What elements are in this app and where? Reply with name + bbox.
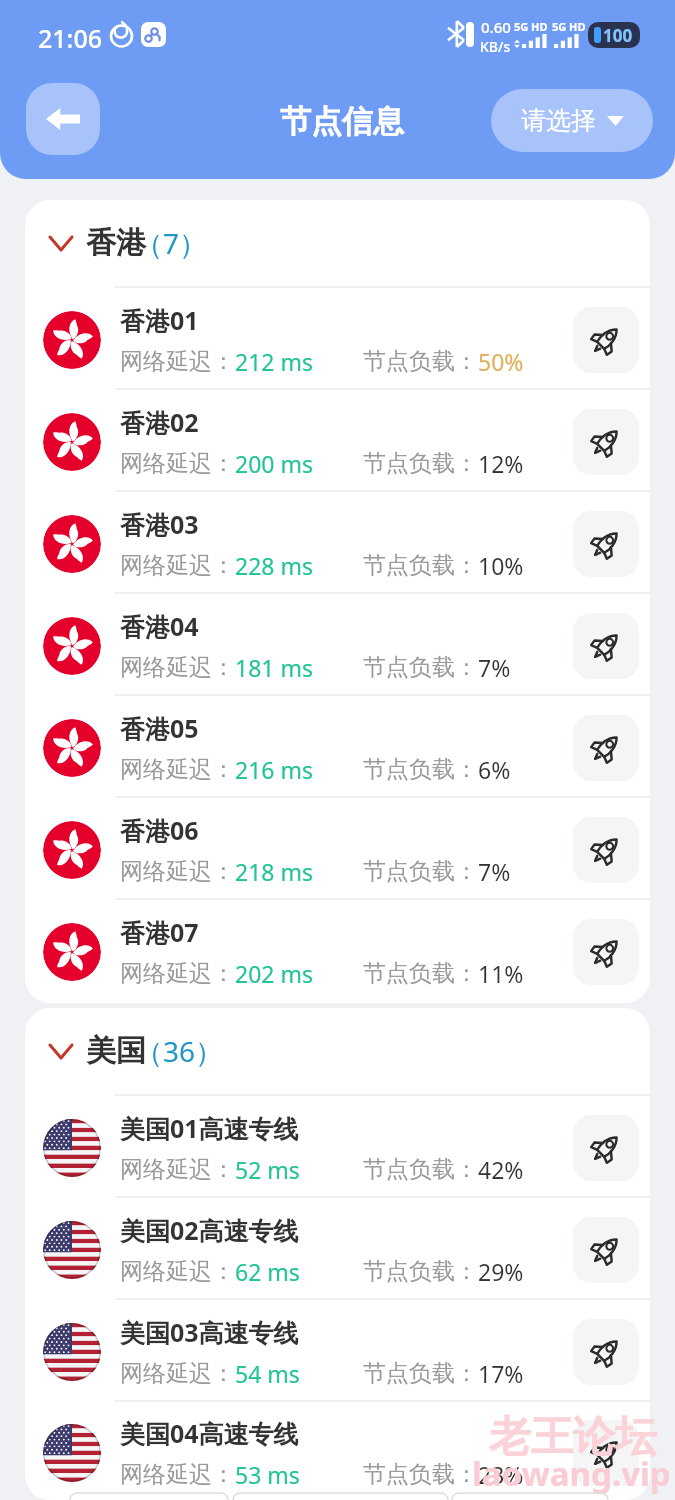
staticText: 0.60 bbox=[481, 17, 511, 37]
staticText: 10% bbox=[478, 550, 524, 581]
staticText: 香港 bbox=[86, 224, 146, 262]
staticText: 5G HD bbox=[552, 19, 586, 34]
button[interactable]: Connect bbox=[573, 1217, 639, 1283]
staticText: 202 ms bbox=[235, 958, 313, 989]
staticText: 节点负载： bbox=[363, 1460, 478, 1489]
staticText: 网络延迟： bbox=[120, 653, 235, 682]
staticText: 54 ms bbox=[235, 1358, 300, 1389]
staticText: 网络延迟： bbox=[120, 551, 235, 580]
staticText: 网络延迟： bbox=[120, 1257, 235, 1286]
staticText: 节点负载： bbox=[363, 347, 478, 376]
staticText: 21:06 bbox=[38, 21, 103, 55]
staticText: 节点负载： bbox=[363, 551, 478, 580]
staticText: 228 ms bbox=[235, 550, 313, 581]
staticText: 老王论坛 bbox=[489, 1411, 657, 1464]
staticText: KB/s bbox=[480, 37, 511, 56]
staticText: 212 ms bbox=[235, 346, 313, 377]
button[interactable]: 香港02 bbox=[25, 390, 650, 490]
staticText: 42% bbox=[478, 1154, 524, 1185]
button[interactable]: Connect bbox=[573, 1420, 639, 1486]
staticText: laowang.vip bbox=[472, 1451, 671, 1496]
staticText: 请选择 bbox=[521, 105, 596, 136]
staticText: 5G HD bbox=[514, 19, 548, 34]
staticText: 节点负载： bbox=[363, 653, 478, 682]
staticText: 7% bbox=[478, 652, 511, 683]
button[interactable]: 香港 bbox=[25, 200, 650, 286]
staticText: 节点负载： bbox=[363, 857, 478, 886]
staticText: 节点负载： bbox=[363, 755, 478, 784]
staticText: 美国02高速专线 bbox=[120, 1213, 299, 1247]
staticText: 节点负载： bbox=[363, 1257, 478, 1286]
staticText: 17% bbox=[478, 1358, 524, 1389]
button[interactable]: Connect bbox=[573, 1319, 639, 1385]
button[interactable]: 香港05 bbox=[25, 696, 650, 796]
staticText: 节点负载： bbox=[363, 1155, 478, 1184]
button[interactable]: 香港07 bbox=[25, 900, 650, 1000]
staticText: 网络延迟： bbox=[120, 347, 235, 376]
staticText: 6% bbox=[478, 754, 511, 785]
button[interactable]: 美国01高速专线 bbox=[25, 1096, 650, 1196]
button[interactable]: Connect bbox=[573, 715, 639, 781]
button[interactable]: Connect bbox=[573, 307, 639, 373]
staticText: 网络延迟： bbox=[120, 1155, 235, 1184]
staticText: 181 ms bbox=[235, 652, 313, 683]
staticText: （7） bbox=[135, 224, 208, 262]
staticText: 网络延迟： bbox=[120, 755, 235, 784]
button[interactable]: 美国03高速专线 bbox=[25, 1300, 650, 1400]
button[interactable]: 请选择 bbox=[491, 89, 653, 152]
staticText: 美国04高速专线 bbox=[120, 1416, 299, 1450]
button[interactable]: Connect bbox=[573, 613, 639, 679]
staticText: 香港07 bbox=[120, 915, 199, 949]
staticText: 62 ms bbox=[235, 1256, 300, 1287]
staticText: 网络延迟： bbox=[120, 959, 235, 988]
staticText: 美国03高速专线 bbox=[120, 1315, 299, 1349]
staticText: 52 ms bbox=[235, 1154, 300, 1185]
staticText: （36） bbox=[135, 1032, 224, 1070]
staticText: 节点负载： bbox=[363, 449, 478, 478]
staticText: 香港01 bbox=[120, 303, 199, 337]
staticText: 美国 bbox=[86, 1032, 146, 1070]
button[interactable]: Connect bbox=[573, 511, 639, 577]
button[interactable]: Connect bbox=[573, 919, 639, 985]
staticText: 100 bbox=[603, 24, 633, 47]
staticText: 50% bbox=[478, 346, 524, 377]
button[interactable]: 美国 bbox=[25, 1008, 650, 1094]
button[interactable]: Connect bbox=[573, 817, 639, 883]
staticText: 香港03 bbox=[120, 507, 199, 541]
staticText: 香港06 bbox=[120, 813, 199, 847]
button[interactable]: Connect bbox=[573, 409, 639, 475]
button[interactable]: 香港04 bbox=[25, 594, 650, 694]
staticText: 节点信息 bbox=[280, 102, 404, 141]
staticText: 网络延迟： bbox=[120, 1460, 235, 1489]
staticText: 218 ms bbox=[235, 856, 313, 887]
staticText: 节点负载： bbox=[363, 959, 478, 988]
staticText: 53 ms bbox=[235, 1459, 300, 1490]
staticText: 网络延迟： bbox=[120, 449, 235, 478]
button[interactable]: 香港06 bbox=[25, 798, 650, 898]
button[interactable]: 美国02高速专线 bbox=[25, 1198, 650, 1298]
staticText: 29% bbox=[478, 1256, 524, 1287]
staticText: 12% bbox=[478, 448, 524, 479]
staticText: 11% bbox=[478, 958, 524, 989]
staticText: 香港04 bbox=[120, 609, 199, 643]
button[interactable]: Back bbox=[26, 83, 100, 155]
staticText: 美国01高速专线 bbox=[120, 1111, 299, 1145]
button[interactable]: 香港01 bbox=[25, 288, 650, 388]
staticText: 23% bbox=[478, 1459, 524, 1490]
staticText: 节点负载： bbox=[363, 1359, 478, 1388]
button[interactable]: Connect bbox=[573, 1115, 639, 1181]
button[interactable]: 美国04高速专线 bbox=[25, 1402, 650, 1500]
staticText: 香港05 bbox=[120, 711, 199, 745]
staticText: 7% bbox=[478, 856, 511, 887]
staticText: 216 ms bbox=[235, 754, 313, 785]
staticText: 网络延迟： bbox=[120, 857, 235, 886]
button[interactable]: 香港03 bbox=[25, 492, 650, 592]
staticText: 200 ms bbox=[235, 448, 313, 479]
staticText: 网络延迟： bbox=[120, 1359, 235, 1388]
staticText: 香港02 bbox=[120, 405, 199, 439]
